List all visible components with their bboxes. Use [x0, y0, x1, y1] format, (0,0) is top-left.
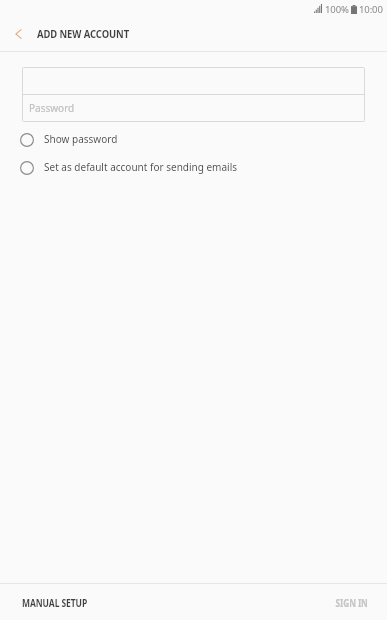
button[interactable]: Password: [22, 95, 365, 122]
button[interactable]: [22, 67, 365, 94]
button[interactable]: MANUAL SETUP: [0, 584, 327, 620]
staticText: MANUAL SETUP: [22, 596, 88, 610]
staticText: 100%: [325, 3, 349, 16]
staticText: 10:00: [359, 3, 383, 16]
button[interactable]: SIGN IN: [327, 584, 387, 620]
staticText: SIGN IN: [336, 596, 368, 610]
button[interactable]: Show password: [0, 125, 387, 153]
staticText: Set as default account for sending email…: [44, 160, 238, 174]
staticText: Show password: [44, 132, 118, 146]
staticText: Password: [29, 101, 75, 115]
staticText: ADD NEW ACCOUNT: [37, 26, 130, 41]
button[interactable]: Set as default account for sending email…: [0, 153, 387, 181]
button[interactable]: Navigate up: [0, 19, 32, 51]
